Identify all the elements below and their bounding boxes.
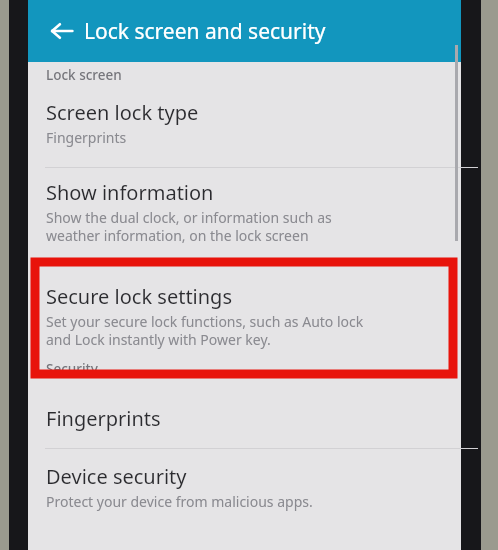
staticText: Screen lock type: [46, 99, 199, 126]
button[interactable]: Screen lock type: [28, 88, 461, 167]
staticText: Lock screen: [46, 66, 122, 84]
staticText: Fingerprints: [46, 128, 127, 147]
button[interactable]: Show information: [28, 168, 461, 259]
button[interactable]: Device security: [28, 449, 461, 511]
staticText: Set your secure lock functions, such as …: [46, 312, 364, 349]
button[interactable]: Back: [42, 11, 82, 51]
staticText: Device security: [46, 463, 187, 490]
staticText: Show information: [46, 179, 214, 206]
button[interactable]: Secure lock settings: [28, 259, 461, 360]
staticText: Protect your device from malicious apps.: [46, 492, 313, 511]
staticText: Lock screen and security: [84, 17, 326, 46]
staticText: Fingerprints: [46, 405, 161, 432]
staticText: Secure lock settings: [46, 283, 232, 310]
staticText: Show the dual clock, or information such…: [46, 208, 332, 245]
button[interactable]: Fingerprints: [28, 388, 461, 448]
staticText: Security: [46, 360, 98, 378]
